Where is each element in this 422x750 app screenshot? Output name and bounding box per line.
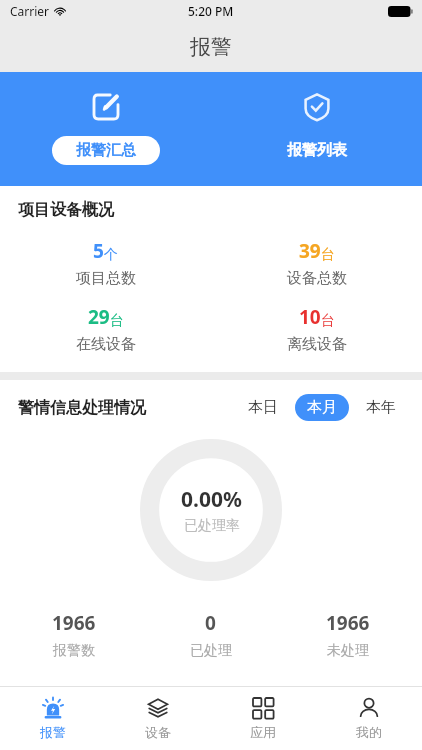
staticText: 已处理 bbox=[190, 642, 232, 660]
staticText: 5:20 PM bbox=[188, 3, 234, 19]
staticText: 0.00% bbox=[181, 485, 242, 514]
staticText: 39 bbox=[299, 238, 321, 264]
staticText: 台 bbox=[321, 246, 335, 264]
staticText: Carrier bbox=[10, 3, 50, 19]
staticText: 我的 bbox=[356, 724, 382, 740]
button[interactable]: 报警汇总 bbox=[0, 72, 211, 186]
staticText: 0 bbox=[205, 610, 216, 636]
staticText: 报警列表 bbox=[287, 141, 347, 160]
staticText: 报警 bbox=[40, 724, 66, 740]
staticText: 台 bbox=[321, 312, 335, 330]
button[interactable]: 设备 bbox=[105, 687, 210, 750]
staticText: 本日 bbox=[248, 398, 278, 417]
button[interactable]: 我的 bbox=[316, 687, 422, 750]
staticText: 未处理 bbox=[327, 642, 369, 660]
staticText: 5 bbox=[93, 238, 104, 264]
button[interactable]: 报警 bbox=[0, 687, 105, 750]
staticText: 1966 bbox=[326, 610, 370, 636]
staticText: 项目设备概况 bbox=[18, 200, 114, 220]
button[interactable]: 0 bbox=[142, 610, 279, 660]
button[interactable]: 1966 bbox=[6, 610, 142, 660]
button[interactable]: 应用 bbox=[210, 687, 316, 750]
staticText: 设备 bbox=[145, 724, 171, 740]
staticText: 本月 bbox=[307, 398, 337, 417]
button[interactable]: 1966 bbox=[279, 610, 416, 660]
staticText: 个 bbox=[104, 246, 118, 264]
staticText: 报警 bbox=[190, 34, 232, 60]
button[interactable]: 10 bbox=[211, 304, 422, 354]
button[interactable]: 本年 bbox=[354, 394, 408, 421]
button[interactable]: 本月 bbox=[295, 394, 349, 421]
button[interactable]: 本日 bbox=[236, 394, 290, 421]
staticText: 在线设备 bbox=[76, 335, 136, 354]
staticText: 报警数 bbox=[53, 642, 95, 660]
button[interactable]: 29 bbox=[0, 304, 211, 354]
staticText: 29 bbox=[88, 304, 110, 330]
staticText: 报警汇总 bbox=[76, 141, 136, 160]
staticText: 1966 bbox=[52, 610, 96, 636]
staticText: 警情信息处理情况 bbox=[18, 398, 146, 418]
button[interactable]: 报警列表 bbox=[211, 72, 422, 186]
button[interactable]: 39 bbox=[211, 238, 422, 288]
staticText: 已处理率 bbox=[184, 517, 240, 535]
staticText: 应用 bbox=[250, 724, 276, 740]
staticText: 项目总数 bbox=[76, 269, 136, 288]
button[interactable]: 5 bbox=[0, 238, 211, 288]
staticText: 离线设备 bbox=[287, 335, 347, 354]
staticText: 台 bbox=[110, 312, 124, 330]
staticText: 本年 bbox=[366, 398, 396, 417]
staticText: 10 bbox=[299, 304, 321, 330]
staticText: 设备总数 bbox=[287, 269, 347, 288]
